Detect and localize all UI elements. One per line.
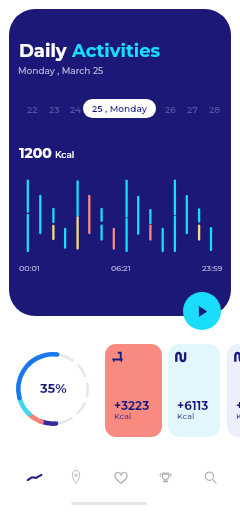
staticText: 23:59	[202, 263, 223, 273]
staticText: 26	[165, 104, 176, 115]
button[interactable]: +5	[227, 344, 240, 437]
staticText: Kcal	[114, 411, 132, 421]
staticText: +3223	[114, 398, 150, 413]
button[interactable]: Favourites	[99, 459, 143, 495]
button[interactable]: Activity	[12, 459, 56, 495]
staticText: 23	[49, 104, 60, 115]
staticText: 25 , Monday	[92, 103, 147, 114]
staticText: 27	[187, 104, 198, 115]
staticText: +6113	[177, 398, 209, 413]
button[interactable]: 25 , Monday	[83, 99, 156, 118]
button[interactable]: Places	[54, 459, 98, 495]
button[interactable]: Awards	[143, 459, 187, 495]
button[interactable]: 26	[159, 99, 181, 119]
button[interactable]: Play	[183, 292, 221, 330]
button[interactable]: 22	[21, 99, 43, 119]
staticText: 24	[70, 104, 82, 115]
button[interactable]: Search	[188, 459, 232, 495]
staticText: Monday , March 25	[18, 65, 104, 76]
button[interactable]: +3223	[105, 344, 162, 437]
staticText: Activities	[72, 40, 161, 62]
staticText: Daily	[19, 40, 72, 62]
staticText: 28	[209, 104, 221, 115]
staticText: Kcal	[55, 149, 75, 160]
button[interactable]: 35%	[16, 352, 90, 426]
staticText: +5	[236, 398, 240, 413]
staticText: Kcal	[177, 411, 195, 421]
staticText: 1200	[19, 144, 52, 161]
staticText: 35%	[40, 380, 67, 396]
staticText: 22	[27, 104, 38, 115]
button[interactable]: 23	[43, 99, 65, 119]
button[interactable]: 27	[181, 99, 203, 119]
button[interactable]: 28	[204, 99, 226, 119]
button[interactable]: +6113	[168, 344, 220, 437]
staticText: 00:01	[19, 263, 40, 273]
button[interactable]: 24	[65, 99, 87, 119]
staticText: 06:21	[111, 263, 131, 273]
staticText: Kcal	[236, 411, 240, 421]
